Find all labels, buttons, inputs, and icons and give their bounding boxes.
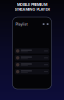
staticText: MOBILE PREMIUM [17,2,47,7]
staticText: STREAMING PLAYER [14,7,49,11]
staticText: Playlist [15,22,27,26]
